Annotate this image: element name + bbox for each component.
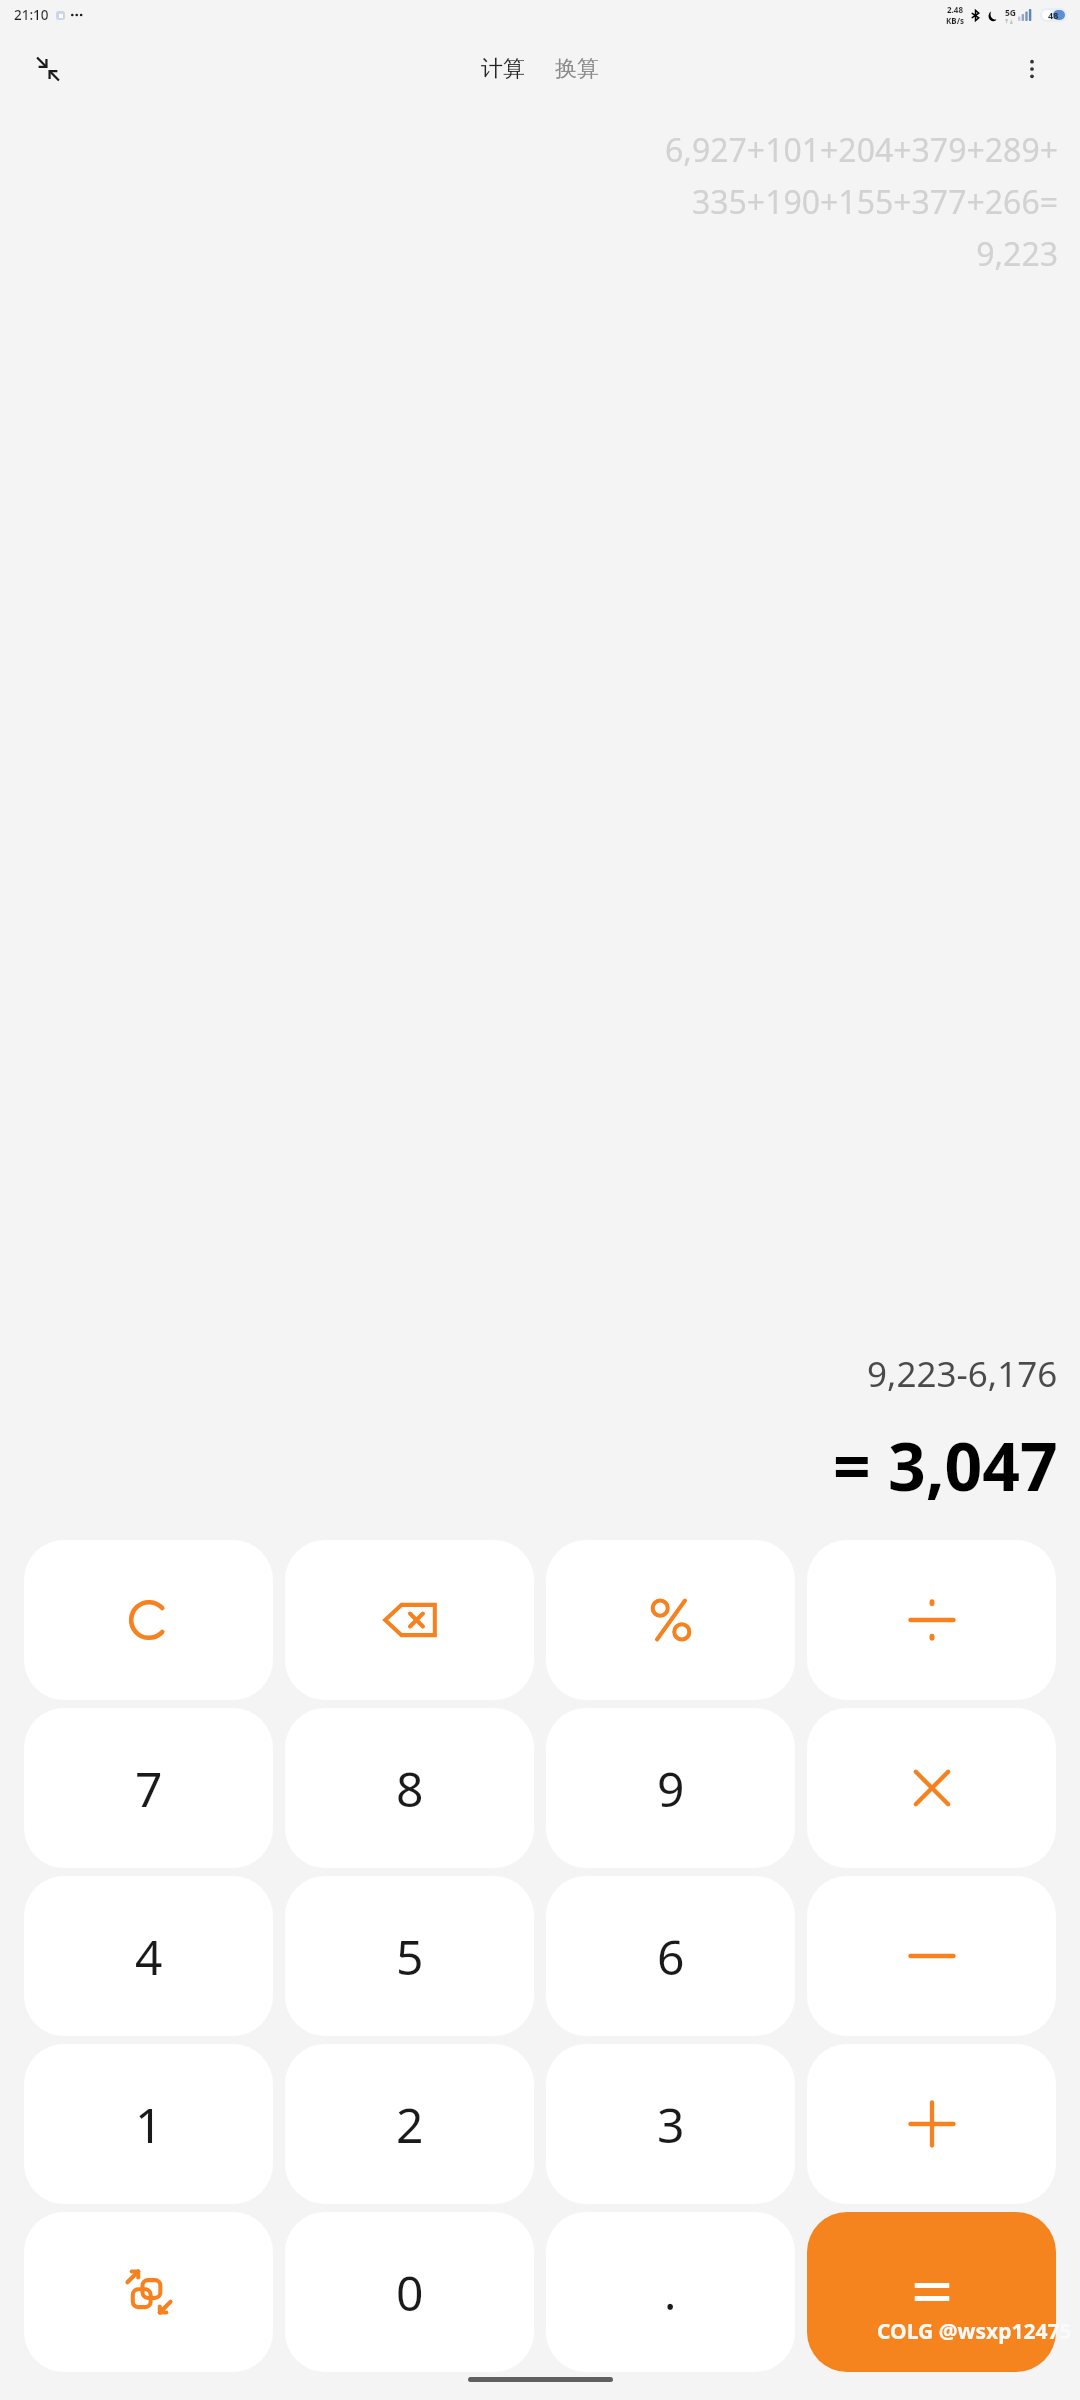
button[interactable]: 5 xyxy=(285,1876,534,2036)
staticText: 9,223-6,176 xyxy=(867,1350,1058,1398)
button[interactable]: 9 xyxy=(546,1708,795,1868)
button[interactable]: 4 xyxy=(24,1876,273,2036)
staticText: 48 xyxy=(1048,9,1059,21)
staticText: 9,223 xyxy=(976,232,1058,276)
staticText: 9 xyxy=(657,1756,685,1821)
staticText: 2.48 xyxy=(947,4,963,15)
button[interactable]: 6 xyxy=(546,1876,795,2036)
button[interactable]: Plus xyxy=(807,2044,1056,2204)
staticText: 计算 xyxy=(481,55,525,83)
button[interactable]: . xyxy=(546,2212,795,2372)
staticText: 5G xyxy=(1005,7,1017,19)
button[interactable]: Backspace xyxy=(285,1540,534,1700)
button[interactable]: Divide xyxy=(807,1540,1056,1700)
staticText: 7 xyxy=(135,1756,163,1821)
button[interactable]: 8 xyxy=(285,1708,534,1868)
staticText: COLG @wsxp12475 xyxy=(877,2317,1072,2346)
staticText: 6,927+101+204+379+289+ xyxy=(665,128,1058,172)
button[interactable]: 0 xyxy=(285,2212,534,2372)
button[interactable]: Clear xyxy=(24,1540,273,1700)
button[interactable]: 7 xyxy=(24,1708,273,1868)
staticText: . xyxy=(664,2261,677,2324)
staticText: = 3,047 xyxy=(833,1420,1058,1510)
staticText: 0 xyxy=(396,2260,424,2325)
button[interactable]: Equals xyxy=(807,2212,1056,2372)
button[interactable]: 3 xyxy=(546,2044,795,2204)
button[interactable]: 1 xyxy=(24,2044,273,2204)
staticText: 335+190+155+377+266= xyxy=(691,180,1058,224)
button[interactable]: Minus xyxy=(807,1876,1056,2036)
staticText: 1 xyxy=(135,2092,163,2157)
button[interactable]: More options xyxy=(1008,45,1056,93)
staticText: 6 xyxy=(657,1924,685,1989)
button[interactable]: Collapse xyxy=(24,45,72,93)
staticText: 8 xyxy=(396,1756,424,1821)
button[interactable]: Unit conversion xyxy=(24,2212,273,2372)
staticText: 5 xyxy=(396,1924,424,1989)
staticText: 2 xyxy=(396,2092,424,2157)
staticText: 3 xyxy=(657,2092,685,2157)
button[interactable]: Multiply xyxy=(807,1708,1056,1868)
button[interactable]: 换算 xyxy=(547,51,607,87)
staticText: KB/s xyxy=(946,15,964,26)
button[interactable]: Percent xyxy=(546,1540,795,1700)
staticText: 换算 xyxy=(555,55,599,83)
button[interactable]: 2 xyxy=(285,2044,534,2204)
staticText: 4 xyxy=(135,1924,163,1989)
staticText: 21:10 xyxy=(14,6,49,24)
button[interactable]: 计算 xyxy=(473,51,533,87)
